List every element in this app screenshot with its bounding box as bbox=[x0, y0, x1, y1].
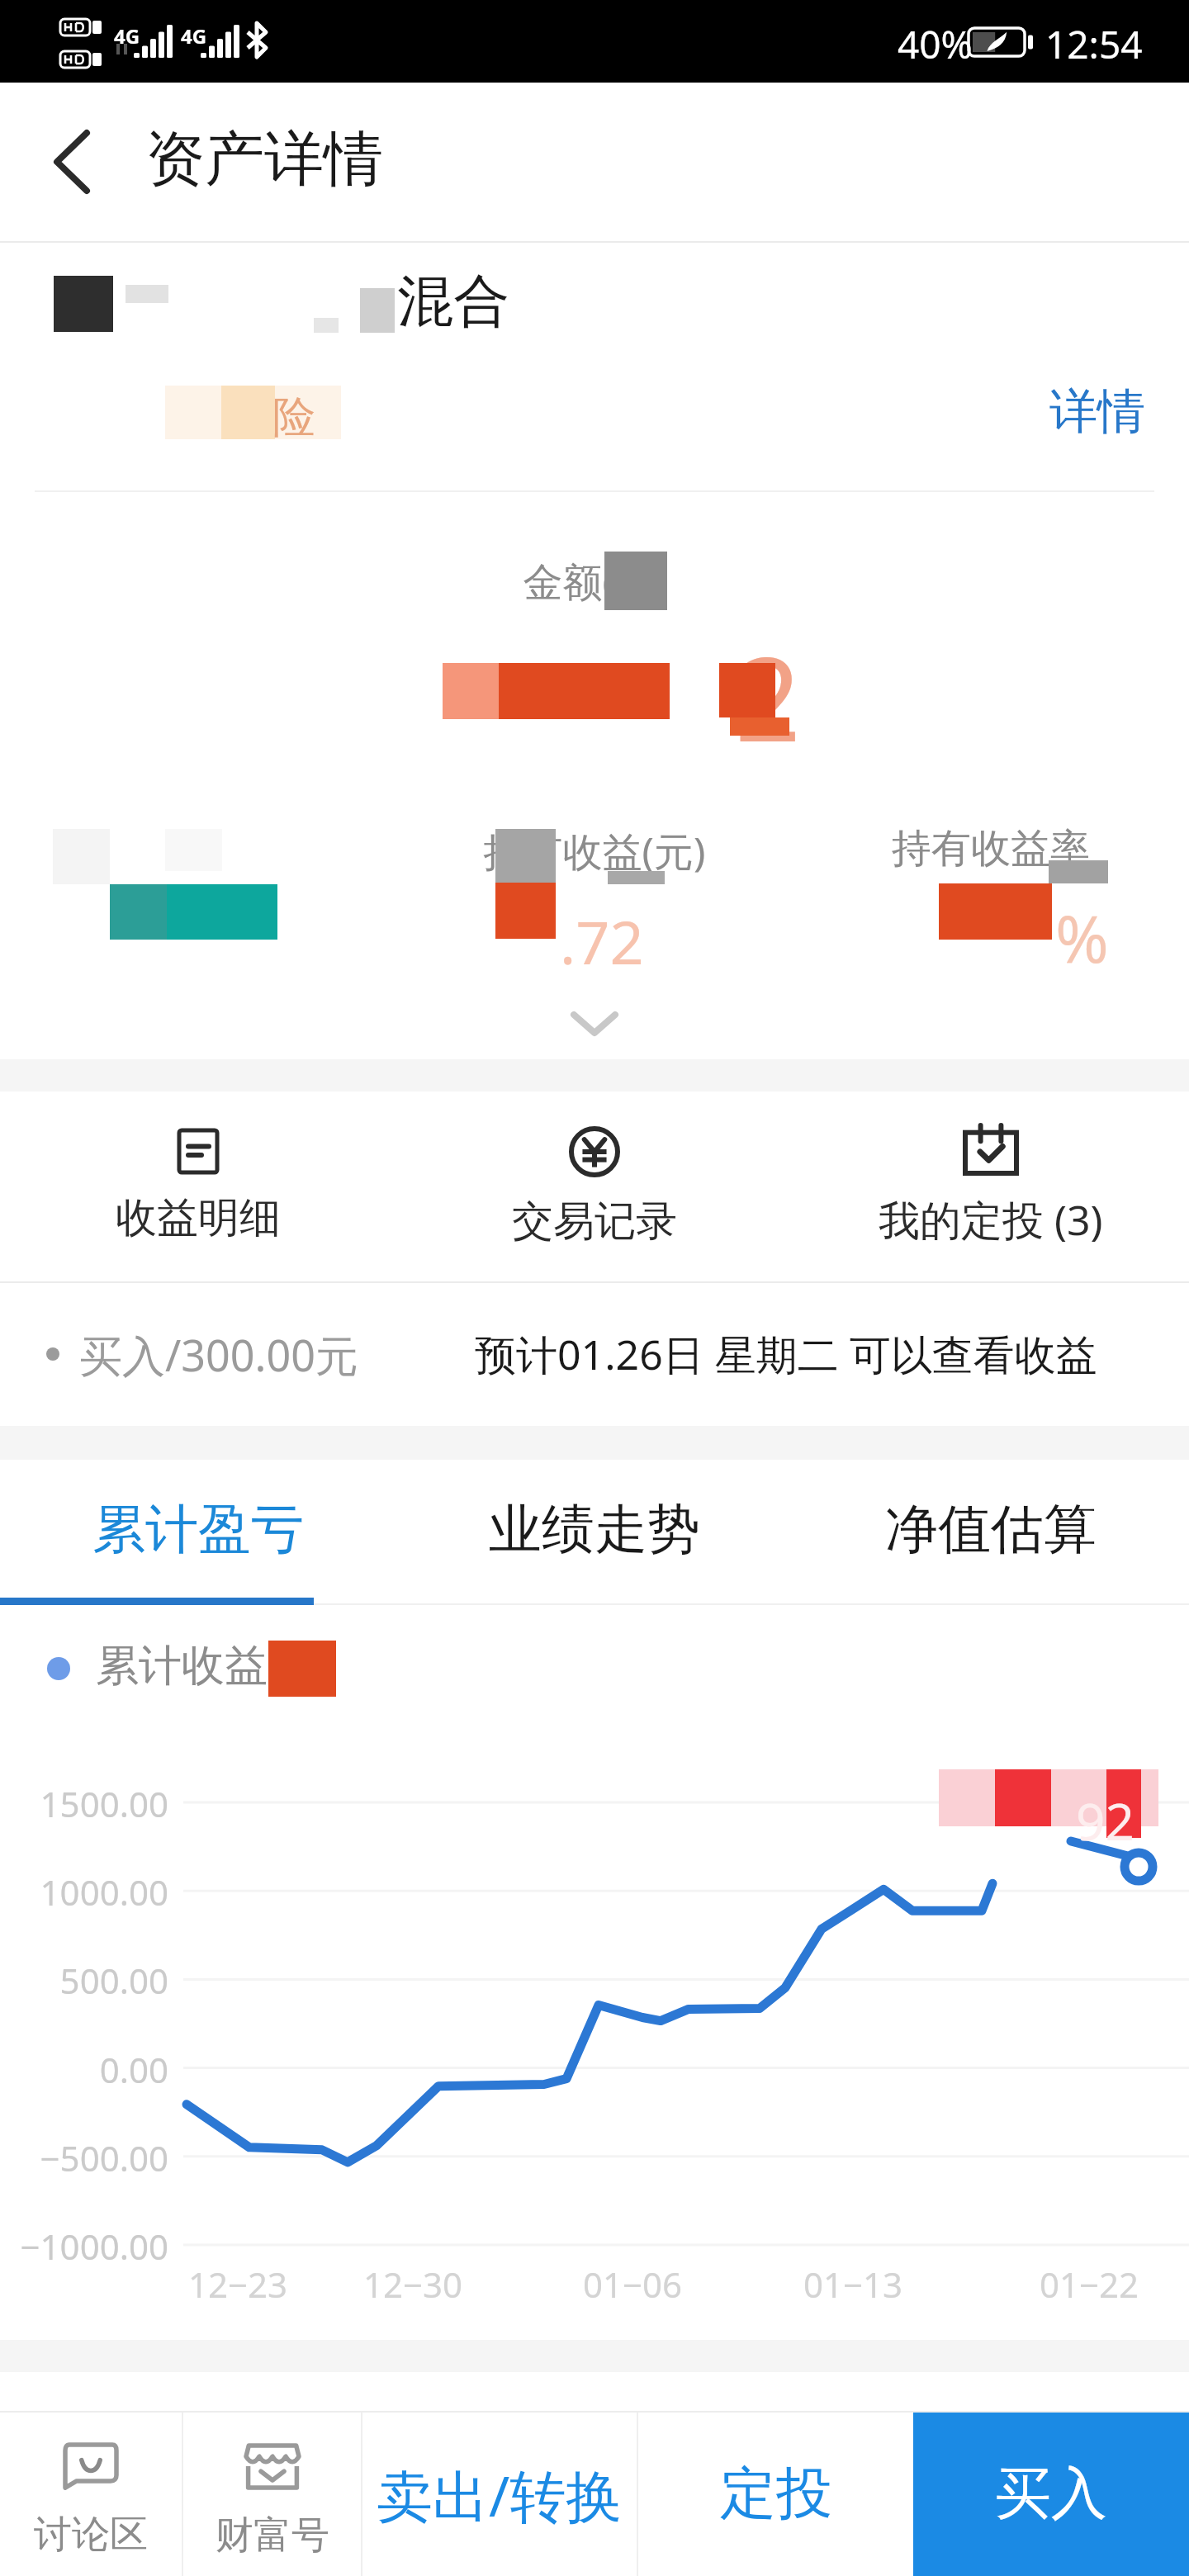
staticText: −1000.00 bbox=[0, 2223, 168, 2270]
staticText: 0.00 bbox=[0, 2046, 168, 2093]
staticText: 累计盈亏 bbox=[92, 1496, 304, 1563]
staticText: 预计01.26日 星期二 可以查看收益 bbox=[475, 1326, 1097, 1382]
staticText: 2 bbox=[735, 618, 802, 775]
staticText: 01−22 bbox=[1007, 2261, 1172, 2308]
staticText: 12:54 bbox=[1045, 18, 1143, 70]
button[interactable]: 我的定投 (3) bbox=[793, 1091, 1189, 1281]
staticText: 1000.00 bbox=[0, 1868, 168, 1915]
button[interactable]: 收益明细 bbox=[0, 1091, 396, 1281]
button[interactable]: 讨论区 bbox=[0, 2413, 182, 2576]
staticText: 交易记录 bbox=[512, 1196, 677, 1248]
staticText: 资产详情 bbox=[145, 122, 383, 197]
staticText: 500.00 bbox=[0, 1957, 168, 2004]
staticText: 险 bbox=[272, 391, 315, 445]
staticText: 业绩走势 bbox=[489, 1496, 700, 1563]
staticText: 混合 bbox=[397, 267, 509, 338]
staticText: 我的定投 (3) bbox=[879, 1191, 1103, 1248]
button[interactable]: Back bbox=[19, 109, 125, 215]
staticText: 详情 bbox=[1049, 381, 1145, 442]
staticText: 定投 bbox=[720, 2459, 832, 2530]
staticText: −500.00 bbox=[0, 2134, 168, 2181]
staticText: 01−13 bbox=[770, 2261, 936, 2308]
staticText: 卖出/转换 bbox=[377, 2456, 623, 2533]
staticText: % bbox=[1055, 894, 1109, 982]
staticText: 买入/300.00元 bbox=[79, 1325, 359, 1384]
staticText: 01−06 bbox=[550, 2261, 715, 2308]
button[interactable]: 买入 bbox=[913, 2413, 1189, 2576]
button[interactable]: 交易记录 bbox=[396, 1091, 793, 1281]
staticText: .72 bbox=[560, 901, 644, 982]
button[interactable]: 累计盈亏 bbox=[0, 1460, 396, 1599]
staticText: 40% bbox=[898, 18, 973, 70]
staticText: 买入 bbox=[995, 2459, 1107, 2530]
staticText: 收益明细 bbox=[116, 1192, 281, 1244]
staticText: 1500.00 bbox=[0, 1780, 168, 1827]
staticText: 金额(元) bbox=[0, 554, 1189, 608]
staticText: 4G bbox=[114, 22, 140, 50]
staticText: 92 bbox=[1076, 1786, 1135, 1855]
button[interactable]: 定投 bbox=[638, 2413, 913, 2576]
button[interactable]: 详情 bbox=[1026, 366, 1168, 457]
staticText: 持有收益(元) bbox=[396, 824, 793, 878]
button[interactable]: 财富号 bbox=[183, 2413, 361, 2576]
staticText: 4G bbox=[181, 22, 207, 50]
button[interactable]: Collapse bbox=[545, 995, 644, 1053]
staticText: 持有收益率 bbox=[793, 824, 1189, 874]
button[interactable]: 业绩走势 bbox=[396, 1460, 793, 1599]
staticText: 12−30 bbox=[330, 2261, 495, 2308]
staticText: 累计收益 bbox=[96, 1639, 268, 1693]
staticText: 讨论区 bbox=[34, 2511, 148, 2559]
button[interactable]: 净值估算 bbox=[793, 1460, 1189, 1599]
staticText: 12−23 bbox=[155, 2261, 320, 2308]
staticText: 财富号 bbox=[216, 2512, 329, 2559]
button[interactable]: 卖出/转换 bbox=[362, 2413, 637, 2576]
staticText: 净值估算 bbox=[885, 1496, 1097, 1563]
